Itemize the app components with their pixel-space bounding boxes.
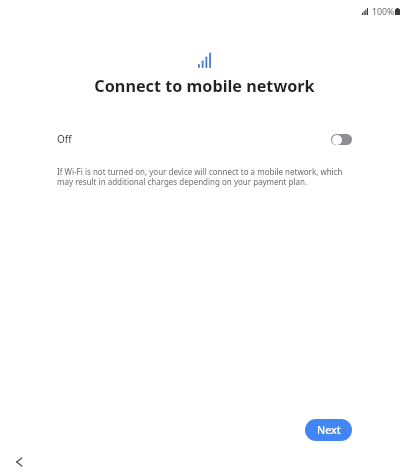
staticText: 100%: [372, 6, 395, 18]
staticText: Connect to mobile network: [94, 75, 315, 97]
button[interactable]: Next: [305, 419, 352, 441]
button[interactable]: Mobile network toggle: [331, 134, 352, 145]
staticText: If Wi-Fi is not turned on, your device w…: [57, 166, 352, 188]
button[interactable]: Off: [57, 132, 352, 146]
staticText: Off: [57, 132, 72, 146]
staticText: Next: [317, 423, 341, 437]
button[interactable]: Back: [8, 451, 30, 473]
